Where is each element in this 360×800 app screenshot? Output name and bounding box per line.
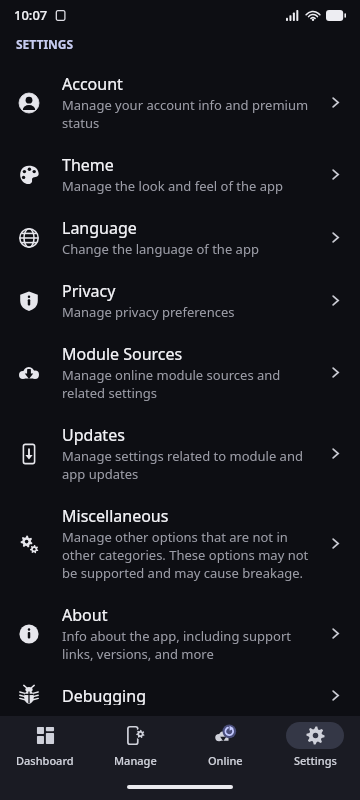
staticText: Updates bbox=[62, 424, 125, 446]
staticText: Theme bbox=[62, 154, 114, 176]
button[interactable]: Debugging bbox=[0, 674, 360, 716]
button[interactable]: About bbox=[0, 593, 360, 674]
staticText: Manage settings related to module and ap… bbox=[62, 447, 319, 483]
staticText: Change the language of the app bbox=[62, 240, 259, 258]
staticText: Manage your account info and premium sta… bbox=[62, 96, 319, 132]
button[interactable]: Online bbox=[180, 716, 270, 774]
staticText: Manage privacy preferences bbox=[62, 303, 235, 321]
staticText: Dashboard bbox=[16, 753, 74, 768]
button[interactable]: Account bbox=[0, 62, 360, 143]
staticText: 10:07 bbox=[14, 6, 48, 24]
button[interactable]: Updates bbox=[0, 413, 360, 494]
staticText: Manage other options that are not in oth… bbox=[62, 528, 319, 582]
staticText: Manage online module sources and related… bbox=[62, 366, 319, 402]
staticText: Privacy bbox=[62, 280, 116, 302]
staticText: Debugging bbox=[62, 685, 146, 705]
button[interactable]: Dashboard bbox=[0, 716, 90, 774]
button[interactable]: Theme bbox=[0, 143, 360, 206]
staticText: Online bbox=[208, 753, 243, 768]
button[interactable]: Privacy bbox=[0, 269, 360, 332]
staticText: Settings bbox=[294, 753, 337, 768]
staticText: Account bbox=[62, 73, 123, 95]
button[interactable]: Module Sources bbox=[0, 332, 360, 413]
staticText: Miscellaneous bbox=[62, 505, 169, 527]
button[interactable]: Language bbox=[0, 206, 360, 269]
staticText: About bbox=[62, 604, 108, 626]
staticText: Manage bbox=[114, 753, 157, 768]
staticText: SETTINGS bbox=[16, 36, 74, 52]
staticText: Manage the look and feel of the app bbox=[62, 177, 283, 195]
staticText: Info about the app, including support li… bbox=[62, 627, 319, 663]
button[interactable]: Manage bbox=[90, 716, 180, 774]
button[interactable]: Settings bbox=[270, 716, 360, 774]
staticText: Language bbox=[62, 217, 137, 239]
staticText: Module Sources bbox=[62, 343, 183, 365]
button[interactable]: Miscellaneous bbox=[0, 494, 360, 593]
